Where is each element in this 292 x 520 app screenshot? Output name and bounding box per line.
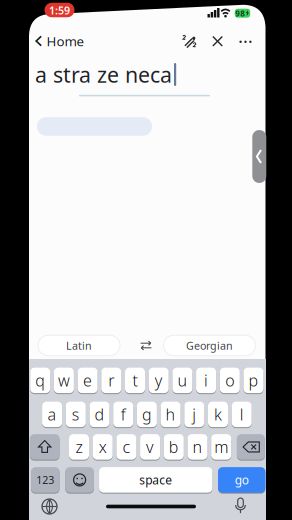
staticText: a xyxy=(48,404,57,425)
button[interactable]: Open side panel xyxy=(252,130,266,183)
button[interactable]: Georgian xyxy=(163,335,255,356)
staticText: 123 xyxy=(36,473,54,487)
button[interactable]: l xyxy=(232,401,252,428)
staticText: go xyxy=(235,472,249,488)
button[interactable]: Handwriting xyxy=(182,34,197,49)
staticText: Georgian xyxy=(186,338,233,353)
button[interactable]: y xyxy=(149,367,169,394)
staticText: v xyxy=(146,436,154,457)
button[interactable]: t xyxy=(125,367,145,394)
staticText: e xyxy=(83,370,92,391)
button[interactable]: Numbers xyxy=(31,467,60,493)
button[interactable]: i xyxy=(196,367,216,394)
staticText: o xyxy=(225,370,234,391)
button[interactable]: d xyxy=(89,401,109,428)
staticText: p xyxy=(248,370,258,391)
button[interactable]: v xyxy=(140,434,160,460)
staticText: u xyxy=(177,370,187,391)
staticText: Latin xyxy=(66,338,92,353)
button[interactable]: b xyxy=(164,434,184,460)
staticText: d xyxy=(94,404,104,425)
staticText: s xyxy=(72,404,80,425)
button[interactable]: u xyxy=(172,367,192,394)
button[interactable]: z xyxy=(69,434,89,460)
button[interactable]: s xyxy=(66,401,86,428)
button[interactable]: Delete xyxy=(237,434,265,460)
staticText: q xyxy=(35,370,45,391)
staticText: x xyxy=(99,436,107,457)
button[interactable]: Emoji xyxy=(65,467,94,493)
button[interactable]: More options xyxy=(239,41,252,43)
staticText: a stra ze neca xyxy=(35,60,172,89)
button[interactable]: n xyxy=(187,434,207,460)
button[interactable]: q xyxy=(30,367,50,394)
button[interactable]: g xyxy=(137,401,157,428)
button[interactable]: space xyxy=(99,467,212,493)
button[interactable]: k xyxy=(208,401,228,428)
button[interactable]: Shift xyxy=(30,434,59,460)
staticText: i xyxy=(204,370,208,391)
button[interactable]: p xyxy=(243,367,263,394)
button[interactable]: w xyxy=(54,367,74,394)
button[interactable]: o xyxy=(220,367,240,394)
staticText: g xyxy=(142,404,152,425)
button[interactable]: h xyxy=(161,401,181,428)
button[interactable]: x xyxy=(93,434,113,460)
button[interactable]: Latin xyxy=(38,335,120,356)
staticText: z xyxy=(75,436,82,457)
staticText: k xyxy=(214,404,222,425)
staticText: c xyxy=(122,436,130,457)
button[interactable]: j xyxy=(184,401,204,428)
button[interactable]: Close xyxy=(212,35,224,47)
button[interactable]: a xyxy=(42,401,62,428)
staticText: h xyxy=(166,404,176,425)
staticText: b xyxy=(169,436,179,457)
button[interactable]: r xyxy=(101,367,121,394)
staticText: space xyxy=(139,472,172,488)
staticText: w xyxy=(58,370,70,391)
staticText: t xyxy=(132,370,137,391)
staticText: Home xyxy=(46,32,84,50)
staticText: r xyxy=(108,370,114,391)
staticText: m xyxy=(214,436,228,457)
button[interactable]: Swap languages xyxy=(139,340,153,351)
staticText: 1:59 xyxy=(49,3,70,17)
button[interactable]: go xyxy=(218,467,265,493)
staticText: n xyxy=(192,436,202,457)
button[interactable]: f xyxy=(113,401,133,428)
button[interactable]: m xyxy=(211,434,231,460)
staticText: j xyxy=(192,404,196,425)
staticText: f xyxy=(121,404,126,425)
button[interactable]: Next keyboard xyxy=(41,498,58,515)
staticText: y xyxy=(155,370,163,391)
staticText: 98 xyxy=(235,8,245,19)
button[interactable]: Back to Home xyxy=(35,32,93,50)
button[interactable]: Dictation xyxy=(234,497,246,514)
button[interactable]: Suggestion xyxy=(37,117,152,136)
button[interactable]: c xyxy=(116,434,136,460)
staticText: l xyxy=(240,404,244,425)
button[interactable]: e xyxy=(78,367,98,394)
